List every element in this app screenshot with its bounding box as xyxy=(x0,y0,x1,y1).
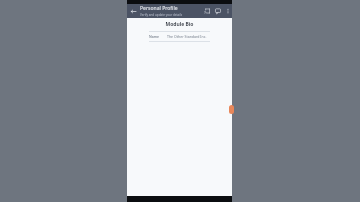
button[interactable]: Cast xyxy=(201,4,212,18)
staticText: Personal Profile xyxy=(140,5,178,12)
button[interactable]: Name xyxy=(127,32,232,41)
staticText: Module Bio xyxy=(127,21,232,28)
button[interactable]: Back xyxy=(127,4,140,18)
button[interactable]: More options xyxy=(223,4,232,18)
staticText: Verify and update your details xyxy=(140,13,183,17)
button[interactable]: Messages xyxy=(212,4,223,18)
staticText: The Other Standard Inc. xyxy=(167,34,207,39)
button[interactable]: Quick action xyxy=(229,105,234,114)
staticText: Name xyxy=(149,34,160,39)
